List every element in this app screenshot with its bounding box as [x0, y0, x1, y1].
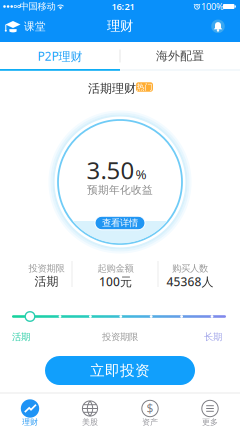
staticText: 理财: [22, 417, 38, 427]
staticText: 美股: [82, 417, 98, 427]
staticText: 预期年化收益: [87, 183, 153, 196]
staticText: 长期: [204, 331, 222, 343]
button[interactable]: 查看详情: [95, 216, 145, 230]
staticText: 购买人数: [172, 263, 208, 274]
staticText: $: [146, 400, 153, 416]
staticText: 活期: [34, 274, 58, 289]
staticText: 中国移动: [19, 1, 55, 12]
staticText: 活期理财: [88, 81, 136, 96]
staticText: 资产: [142, 417, 158, 427]
staticText: 课堂: [24, 20, 46, 33]
staticText: 活期: [12, 331, 30, 343]
staticText: 起购金额: [97, 263, 133, 274]
button[interactable]: 投资期限选择: [25, 312, 35, 321]
staticText: 投资期限: [102, 331, 138, 343]
staticText: 16:21: [111, 0, 134, 13]
staticText: 3.50: [86, 154, 134, 186]
button[interactable]: 立即投资: [45, 356, 195, 385]
button[interactable]: 美股: [60, 393, 120, 427]
button[interactable]: 更多: [180, 393, 240, 427]
staticText: 100元: [99, 273, 132, 289]
staticText: 热门: [136, 82, 152, 92]
button[interactable]: 海外配置: [120, 43, 240, 69]
button[interactable]: P2P理财: [0, 43, 120, 69]
staticText: 查看详情: [102, 217, 138, 229]
staticText: 海外配置: [156, 49, 204, 63]
staticText: 更多: [202, 417, 218, 427]
button[interactable]: 课堂: [4, 20, 46, 33]
button[interactable]: 理财: [0, 393, 60, 427]
button[interactable]: $: [120, 393, 180, 427]
staticText: 45368人: [166, 273, 213, 289]
staticText: 立即投资: [90, 361, 150, 379]
staticText: 理财: [107, 18, 133, 34]
staticText: P2P理财: [37, 48, 82, 64]
staticText: %: [135, 165, 146, 183]
staticText: 投资期限: [28, 263, 64, 274]
staticText: 100%: [201, 0, 224, 13]
button[interactable]: 消息: [211, 20, 225, 33]
